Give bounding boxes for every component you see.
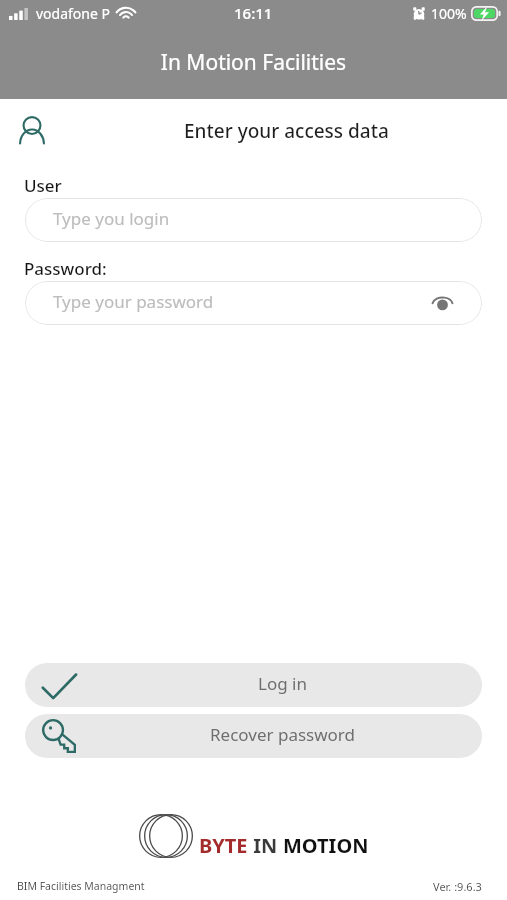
staticText: Password: (24, 257, 107, 280)
staticText: 100% (431, 4, 467, 23)
staticText: IN (248, 832, 283, 859)
staticText: In Motion Facilities (0, 48, 507, 77)
staticText: BYTE (199, 832, 248, 859)
staticText: vodafone P (36, 4, 110, 23)
other: Recover password (41, 718, 77, 754)
button[interactable]: Type you login (25, 198, 482, 242)
staticText: MOTION (283, 832, 369, 859)
staticText: User (24, 174, 62, 197)
button[interactable]: Log in (25, 663, 482, 707)
staticText: Type your password (53, 290, 214, 313)
staticText: 16:11 (234, 3, 273, 23)
other: Log in (41, 667, 77, 703)
staticText: Log in (258, 672, 307, 695)
staticText: Recover password (210, 723, 355, 746)
staticText: BIM Facilities Managment (17, 879, 145, 893)
other: Show password (431, 292, 454, 315)
button[interactable]: Recover password (25, 714, 482, 758)
button[interactable]: Type your password (25, 281, 482, 325)
staticText: Type you login (53, 207, 170, 230)
staticText: Ver. :9.6.3 (433, 879, 482, 894)
staticText: Enter your access data (184, 118, 389, 144)
